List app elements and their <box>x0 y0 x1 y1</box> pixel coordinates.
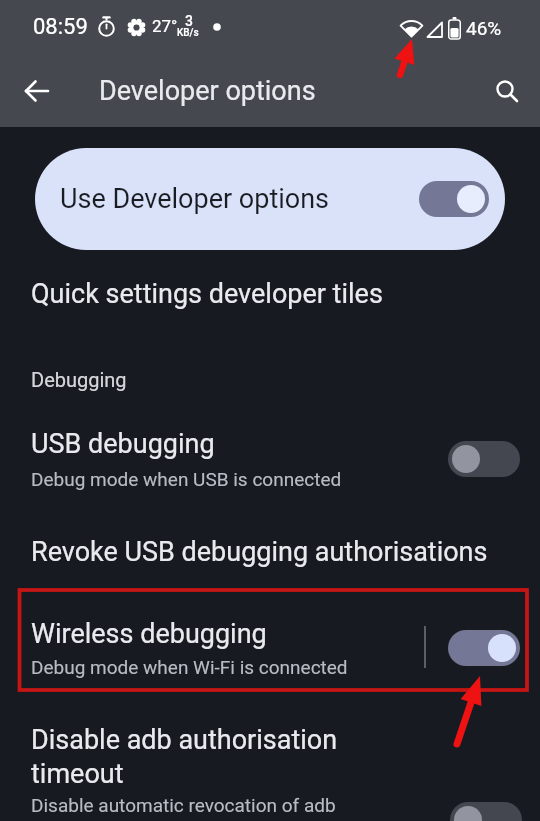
staticText: Revoke USB debugging authorisations <box>31 536 488 568</box>
staticText: Quick settings developer tiles <box>31 278 383 310</box>
staticText: USB debugging <box>31 428 215 460</box>
staticText: Use Developer options <box>60 183 330 215</box>
button[interactable] <box>0 420 540 500</box>
button[interactable] <box>0 600 540 690</box>
button[interactable]: Use Developer options <box>35 148 505 250</box>
staticText: Developer options <box>99 75 316 107</box>
staticText: 3 <box>185 13 193 29</box>
staticText: 46% <box>466 17 502 39</box>
button[interactable] <box>448 441 520 477</box>
staticText: 08:59 <box>33 14 88 40</box>
staticText: Debugging <box>31 368 127 391</box>
staticText: 27° <box>152 16 178 36</box>
button[interactable] <box>448 630 520 666</box>
staticText: Debug mode when USB is connected <box>31 468 342 490</box>
staticText: Disable automatic revocation of adb <box>31 794 336 816</box>
button[interactable] <box>484 68 530 114</box>
button[interactable] <box>0 258 540 332</box>
button[interactable] <box>419 181 489 217</box>
staticText: Disable adb authorisation <box>31 724 338 756</box>
staticText: Debug mode when Wi-Fi is connected <box>31 656 348 678</box>
button[interactable] <box>450 802 522 821</box>
button[interactable] <box>0 710 540 821</box>
staticText: timeout <box>31 758 124 790</box>
staticText: KB/s <box>177 27 199 39</box>
button[interactable] <box>0 518 540 588</box>
button[interactable] <box>14 68 60 114</box>
staticText: Wireless debugging <box>31 618 267 650</box>
